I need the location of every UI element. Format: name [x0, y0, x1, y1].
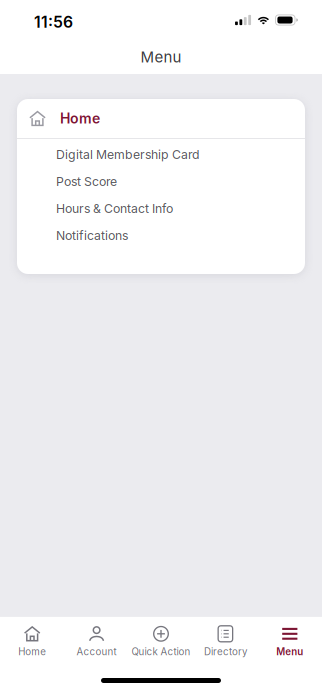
staticText: Home	[60, 110, 100, 127]
staticText: Quick Action	[131, 646, 190, 658]
staticText: Hours & Contact Info	[56, 201, 173, 216]
staticText: 11:56	[34, 12, 73, 31]
staticText: Post Score	[56, 174, 117, 189]
button[interactable]: Digital Membership Card	[17, 141, 305, 168]
button[interactable]: Home	[17, 99, 305, 138]
button[interactable]: Menu	[258, 625, 322, 659]
staticText: Account	[77, 646, 117, 658]
staticText: Directory	[204, 646, 247, 658]
button[interactable]: Quick Action	[129, 625, 193, 659]
staticText: Notifications	[56, 228, 128, 243]
staticText: Digital Membership Card	[56, 147, 200, 162]
button[interactable]: Notifications	[17, 222, 305, 249]
button[interactable]: Directory	[193, 625, 258, 659]
staticText: Home	[18, 646, 46, 658]
button[interactable]: Home	[0, 625, 64, 659]
button[interactable]: Hours & Contact Info	[17, 195, 305, 222]
button[interactable]: Account	[64, 625, 129, 659]
staticText: Menu	[276, 646, 303, 658]
staticText: Menu	[140, 48, 181, 66]
button[interactable]: Post Score	[17, 168, 305, 195]
